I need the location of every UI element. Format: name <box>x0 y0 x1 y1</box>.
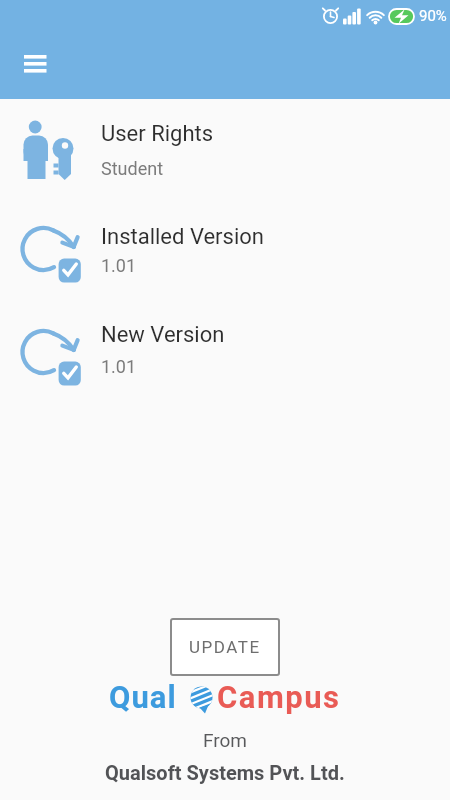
staticText: User Rights <box>101 121 214 147</box>
button[interactable]: UPDATE <box>170 618 280 676</box>
button[interactable]: User Rights <box>0 108 450 192</box>
staticText: 90% <box>419 7 447 25</box>
button[interactable]: Installed Version <box>0 214 450 292</box>
staticText: New Version <box>101 322 225 348</box>
staticText: Qualsoft Systems Pvt. Ltd. <box>105 761 345 784</box>
staticText: Installed Version <box>101 224 264 250</box>
staticText: 1.01 <box>101 255 137 276</box>
staticText: From <box>203 729 248 751</box>
staticText: 1.01 <box>101 356 137 377</box>
button[interactable] <box>13 45 57 83</box>
button[interactable]: New Version <box>0 314 450 392</box>
staticText: UPDATE <box>189 637 261 657</box>
staticText: Campus <box>217 679 341 715</box>
staticText: Student <box>101 158 164 179</box>
staticText: Qual <box>109 679 177 715</box>
